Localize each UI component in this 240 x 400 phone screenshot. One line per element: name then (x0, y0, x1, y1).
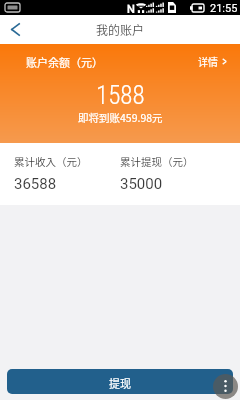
button[interactable]: Back (1, 15, 30, 44)
staticText: 账户余额（元） (26, 54, 103, 70)
staticText: 35000 (120, 175, 163, 193)
staticText: 我的账户 (96, 21, 145, 38)
staticText: 21:55 (210, 2, 238, 15)
staticText: 即将到账459.98元 (78, 110, 163, 125)
button[interactable]: 提现 (7, 369, 233, 394)
staticText: 36588 (14, 175, 57, 193)
staticText: 累计收入（元） (14, 154, 88, 169)
staticText: 1588 (96, 81, 145, 110)
staticText: 详情 (198, 54, 218, 68)
staticText: 提现 (109, 375, 131, 391)
staticText: N (127, 3, 135, 13)
button[interactable]: 详情 (192, 50, 233, 72)
button[interactable]: More options (213, 374, 238, 399)
staticText: 累计提现（元） (120, 154, 194, 169)
